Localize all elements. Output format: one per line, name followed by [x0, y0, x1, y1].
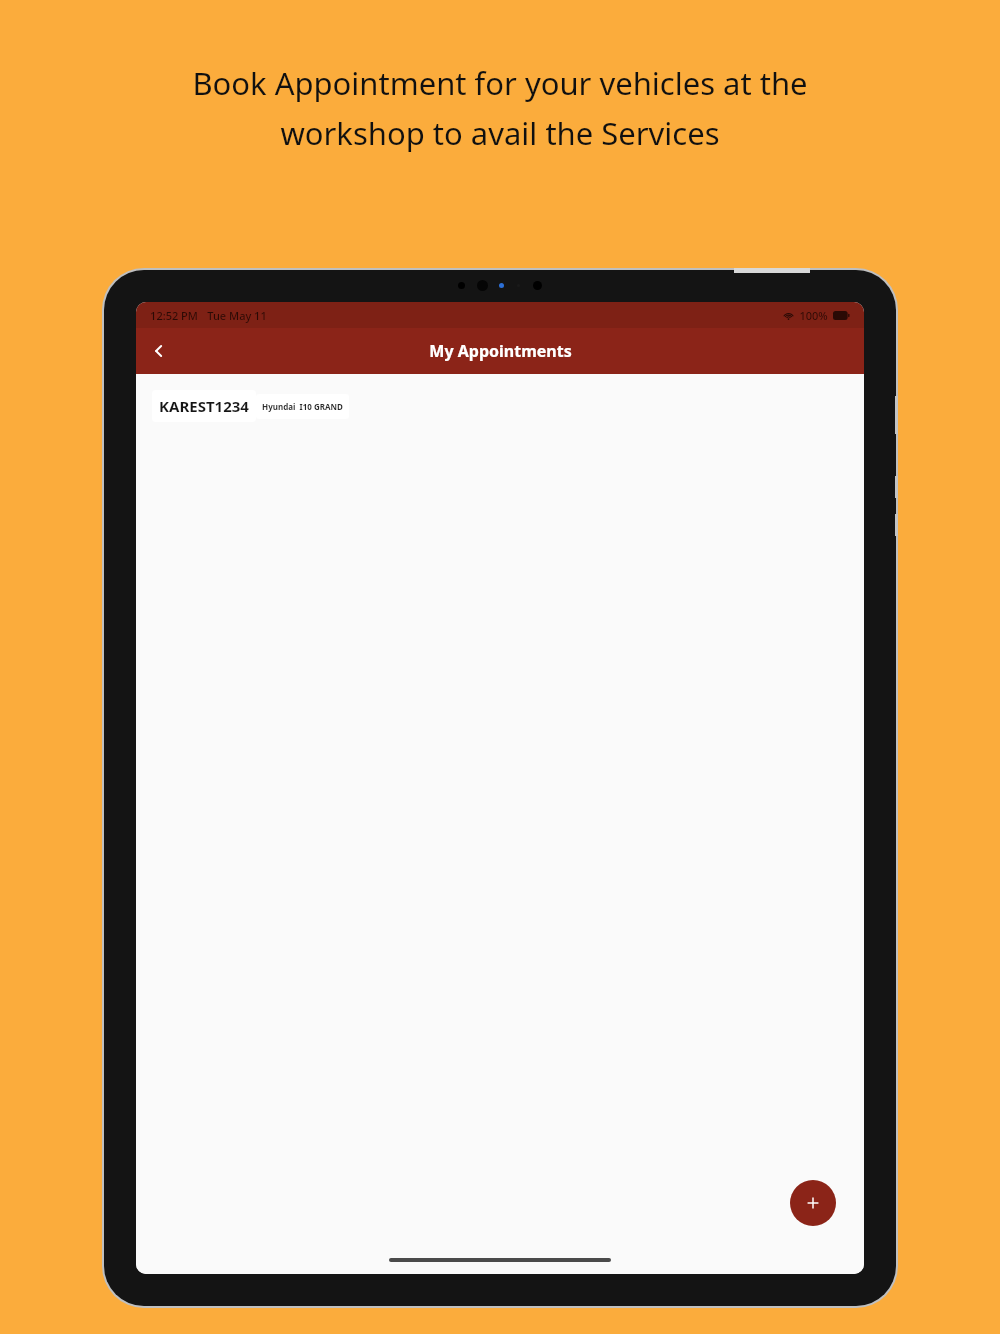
staticText: 12:52 PM	[150, 308, 198, 323]
staticText: Tue May 11	[207, 308, 267, 323]
button[interactable]: Back	[136, 328, 182, 374]
staticText: Hyundai I10 GRAND	[262, 401, 343, 412]
staticText: workshop to avail the Services	[280, 112, 720, 154]
staticText: Book Appointment for your vehicles at th…	[192, 62, 808, 104]
staticText: 100%	[799, 308, 828, 323]
button[interactable]: KAREST1234	[152, 390, 349, 422]
button[interactable]: Add appointment	[790, 1180, 836, 1226]
staticText: My Appointments	[429, 340, 572, 362]
staticText: KAREST1234	[159, 396, 249, 416]
